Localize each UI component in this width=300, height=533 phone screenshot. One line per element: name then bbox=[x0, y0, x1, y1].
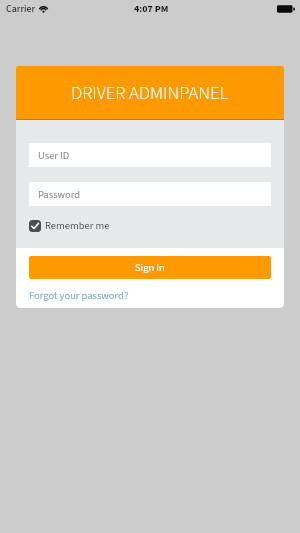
staticText: Password bbox=[38, 187, 81, 202]
staticText: User ID bbox=[38, 148, 70, 163]
button[interactable]: Password bbox=[29, 182, 271, 206]
staticText: Carrier bbox=[6, 2, 36, 16]
other: Battery full bbox=[277, 5, 295, 13]
staticText: 4:07 PM bbox=[134, 2, 169, 16]
staticText: Sign In bbox=[135, 260, 165, 275]
staticText: DRIVER ADMINPANEL bbox=[71, 80, 229, 106]
staticText: Forgot your password? bbox=[29, 288, 129, 303]
button[interactable]: Forgot your password? bbox=[29, 288, 129, 303]
button[interactable]: Sign In bbox=[29, 256, 271, 279]
other: Wi-Fi signal bbox=[39, 4, 48, 12]
staticText: Remember me bbox=[45, 218, 110, 233]
button[interactable]: Remember me bbox=[29, 218, 110, 233]
button[interactable]: User ID bbox=[29, 143, 271, 167]
